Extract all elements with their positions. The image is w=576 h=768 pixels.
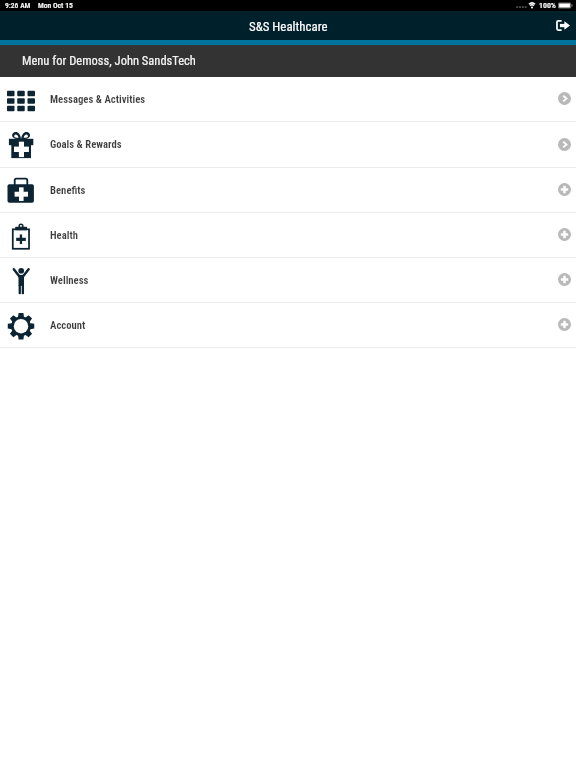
staticText: Messages & Activities [50, 93, 146, 106]
staticText: Goals & Rewards [50, 138, 122, 151]
staticText: 9:26 AM [5, 1, 31, 10]
staticText: Health [50, 229, 78, 242]
staticText: Account [50, 319, 86, 332]
staticText: S&S Healthcare [249, 19, 328, 34]
button[interactable]: Health [0, 213, 576, 258]
button[interactable]: Log out [547, 11, 576, 40]
button[interactable]: Benefits [0, 168, 576, 213]
staticText: Mon Oct 15 [38, 1, 73, 10]
staticText: Menu for Demoss, John SandsTech [22, 53, 196, 68]
button[interactable]: Messages & Activities [0, 77, 576, 122]
staticText: Benefits [50, 184, 86, 197]
staticText: Wellness [50, 274, 89, 287]
button[interactable]: Wellness [0, 258, 576, 303]
button[interactable]: Goals & Rewards [0, 122, 576, 168]
button[interactable]: Account [0, 303, 576, 348]
staticText: 100% [539, 1, 556, 10]
